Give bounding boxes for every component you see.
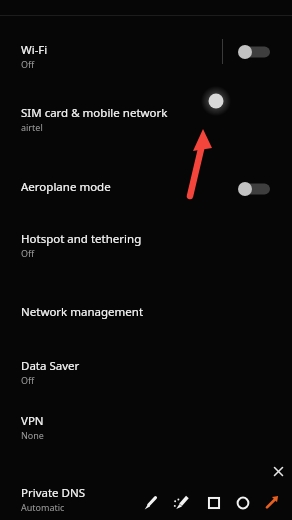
button[interactable]: Wi-Fi xyxy=(0,42,292,82)
button[interactable]: Close xyxy=(272,465,285,478)
staticText: Off xyxy=(21,58,35,70)
button[interactable]: SIM card & mobile network xyxy=(0,105,292,145)
button[interactable]: Network management xyxy=(0,304,292,334)
button[interactable]: Rectangle xyxy=(205,494,223,512)
staticText: airtel xyxy=(21,121,43,133)
staticText: Data Saver xyxy=(21,358,80,374)
button[interactable]: Highlighter xyxy=(173,494,191,512)
staticText: Automatic xyxy=(21,501,65,513)
staticText: Off xyxy=(21,247,35,259)
staticText: VPN xyxy=(21,413,44,429)
button[interactable]: Oval xyxy=(234,494,252,512)
staticText: Off xyxy=(21,374,35,386)
button[interactable]: Aeroplane mode xyxy=(0,179,292,209)
button[interactable]: Private DNS xyxy=(0,485,292,520)
button[interactable]: Toggle Aeroplane mode xyxy=(238,182,270,196)
staticText: SIM card & mobile network xyxy=(21,105,168,121)
staticText: Hotspot and tethering xyxy=(21,231,142,247)
button[interactable]: Hotspot and tethering xyxy=(0,231,292,271)
button[interactable]: Arrow xyxy=(263,493,281,511)
button[interactable]: Brush xyxy=(142,494,160,512)
button[interactable]: Data Saver xyxy=(0,358,292,398)
button[interactable]: VPN xyxy=(0,413,292,453)
staticText: Network management xyxy=(21,304,144,320)
staticText: Wi-Fi xyxy=(21,42,48,58)
button[interactable]: Toggle Wi-Fi xyxy=(238,45,270,59)
staticText: Aeroplane mode xyxy=(21,179,111,195)
staticText: None xyxy=(21,429,44,441)
staticText: Private DNS xyxy=(21,485,86,501)
